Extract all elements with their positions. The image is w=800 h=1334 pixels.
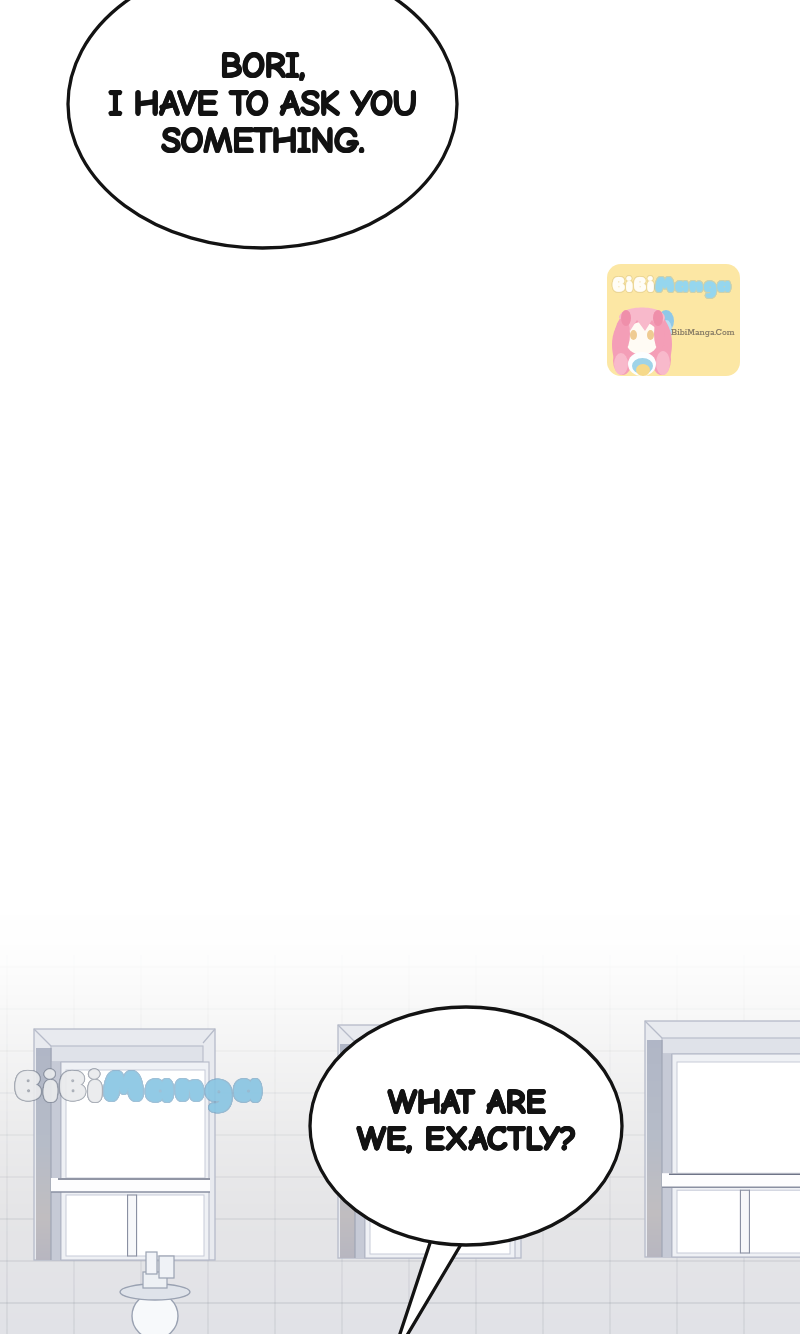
button[interactable]: BibiManga logo — [0, 0, 800, 1334]
button[interactable]: BibiManga logo — [607, 264, 740, 376]
